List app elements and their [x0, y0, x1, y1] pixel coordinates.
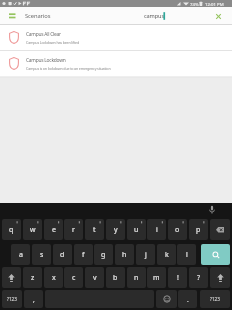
staticText: k	[165, 250, 169, 260]
button[interactable]: ?123	[2, 290, 22, 308]
button[interactable]: p	[189, 219, 208, 240]
staticText: x	[52, 273, 56, 283]
button[interactable]: !	[168, 267, 187, 288]
staticText: g	[101, 250, 106, 260]
button[interactable]: k	[157, 244, 176, 265]
button[interactable]	[210, 267, 230, 288]
button[interactable]: a	[11, 244, 30, 265]
button[interactable]: d	[53, 244, 72, 265]
button[interactable]: y	[106, 219, 125, 240]
button[interactable]: e	[44, 219, 63, 240]
button[interactable]: ?	[189, 267, 208, 288]
button[interactable]: Campus All Clear	[0, 25, 232, 50]
staticText: a	[19, 250, 23, 260]
staticText: ,	[33, 295, 35, 304]
button[interactable]: q	[2, 219, 21, 240]
staticText: y	[114, 225, 118, 235]
staticText: Campus Lockdown has been lifted	[26, 40, 79, 45]
button[interactable]: r	[64, 219, 83, 240]
staticText: campus	[144, 12, 165, 20]
button[interactable]: z	[23, 267, 42, 288]
button[interactable]: u	[127, 219, 146, 240]
staticText: Scenarios	[25, 12, 51, 20]
staticText: w	[30, 225, 36, 235]
staticText: i	[156, 225, 158, 235]
button[interactable]: j	[136, 244, 155, 265]
staticText: u	[134, 225, 139, 235]
staticText: r	[72, 225, 75, 235]
staticText: o	[175, 225, 180, 235]
staticText: s	[40, 250, 44, 260]
button[interactable]: f	[74, 244, 93, 265]
button[interactable]: ?123	[200, 290, 230, 308]
staticText: q	[9, 225, 14, 235]
staticText: ?	[197, 273, 201, 283]
staticText: Campus Lockdown	[26, 57, 66, 64]
button[interactable]: v	[85, 267, 104, 288]
staticText: d	[60, 250, 65, 260]
button[interactable]: w	[23, 219, 42, 240]
button[interactable]: b	[106, 267, 125, 288]
button[interactable]: h	[115, 244, 134, 265]
staticText: e	[52, 225, 56, 235]
staticText: l	[186, 250, 188, 260]
button[interactable]	[156, 290, 177, 308]
button[interactable]: Campus Lockdown	[0, 51, 232, 76]
staticText: b	[113, 273, 118, 283]
staticText: .	[187, 295, 189, 304]
button[interactable]: x	[44, 267, 63, 288]
staticText: p	[196, 225, 201, 235]
staticText: ?123	[210, 296, 220, 302]
staticText: ?123	[7, 296, 17, 302]
staticText: v	[93, 273, 97, 283]
staticText: h	[122, 250, 127, 260]
button[interactable]: o	[168, 219, 187, 240]
button[interactable]: m	[147, 267, 166, 288]
staticText: t	[93, 225, 96, 235]
button[interactable]	[212, 10, 224, 22]
button[interactable]: c	[64, 267, 83, 288]
staticText: n	[134, 273, 139, 283]
staticText: z	[31, 273, 35, 283]
button[interactable]: i	[147, 219, 166, 240]
staticText: c	[72, 273, 76, 283]
button[interactable]	[2, 267, 21, 288]
button[interactable]: n	[127, 267, 146, 288]
button[interactable]: l	[177, 244, 196, 265]
button[interactable]	[6, 9, 20, 23]
button[interactable]	[210, 219, 230, 240]
button[interactable]: .	[178, 290, 197, 308]
staticText: Campus All Clear	[26, 31, 61, 38]
button[interactable]: ,	[24, 290, 43, 308]
staticText: !	[177, 273, 179, 283]
staticText: 74%	[190, 1, 199, 7]
staticText: Campus is on lockdown due to an emergenc…	[26, 66, 111, 71]
staticText: j	[145, 250, 147, 260]
button[interactable]: g	[94, 244, 113, 265]
staticText: 12:01 PM	[205, 1, 224, 7]
staticText: m	[153, 273, 160, 283]
button[interactable]	[201, 244, 230, 265]
button[interactable]: t	[85, 219, 104, 240]
staticText: f	[82, 250, 85, 260]
button[interactable]: s	[32, 244, 51, 265]
